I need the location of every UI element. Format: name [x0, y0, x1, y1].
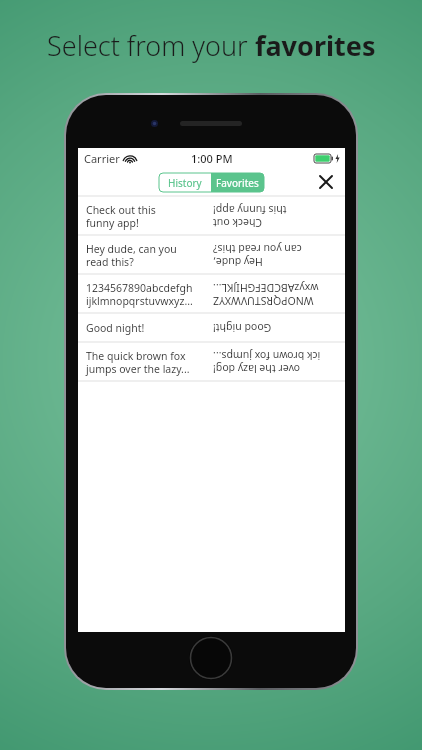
- button[interactable]: History: [159, 173, 211, 192]
- staticText: Hey dude, can you read this?: [213, 242, 337, 269]
- staticText: favorites: [255, 27, 376, 64]
- staticText: over the lazy dog! ick brown fox jumps..…: [213, 349, 337, 376]
- staticText: History: [168, 176, 202, 190]
- staticText: Select from your: [47, 27, 255, 64]
- staticText: Hey dude, can you read this?: [86, 242, 209, 269]
- staticText: 1234567890abcdefgh ijklmnopqrstuvwxyz...: [86, 281, 209, 308]
- button[interactable]: Check out this funny app!: [78, 197, 345, 235]
- button[interactable]: Favorites: [211, 173, 264, 192]
- staticText: Check out this funny app!: [86, 203, 209, 230]
- staticText: Check out this funny app!: [213, 203, 337, 230]
- button[interactable]: The quick brown fox jumps over the lazy.…: [78, 343, 345, 381]
- staticText: 1:00 PM: [191, 151, 233, 166]
- staticText: Carrier: [84, 151, 120, 166]
- staticText: Good night!: [213, 321, 337, 335]
- staticText: Good night!: [86, 321, 209, 335]
- staticText: The quick brown fox jumps over the lazy.…: [86, 349, 209, 376]
- button[interactable]: Close: [316, 172, 336, 192]
- button[interactable]: Hey dude, can you read this?: [78, 236, 345, 274]
- staticText: Favorites: [216, 176, 259, 190]
- staticText: WNOPQRSTUVWXYZ wxyzABCDEFGHIJKL...: [213, 281, 337, 308]
- button[interactable]: 1234567890abcdefgh ijklmnopqrstuvwxyz...: [78, 275, 345, 313]
- button[interactable]: Good night!: [78, 314, 345, 342]
